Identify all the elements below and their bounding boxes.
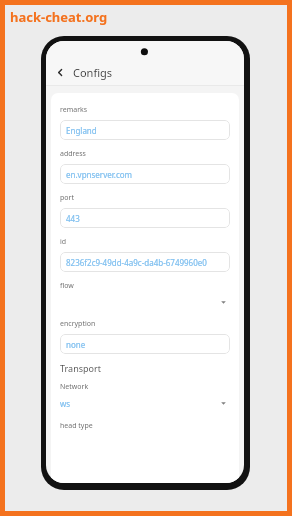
staticText: none — [66, 339, 86, 350]
staticText: id — [60, 237, 67, 247]
staticText: hack-cheat.org — [10, 8, 108, 26]
button[interactable]: en.vpnserver.com — [60, 164, 230, 184]
staticText: England — [66, 125, 97, 136]
staticText: en.vpnserver.com — [66, 169, 133, 180]
button[interactable]: none — [60, 334, 230, 354]
staticText: Transport — [60, 362, 101, 374]
staticText: encryption — [60, 319, 96, 329]
staticText: remarks — [60, 105, 88, 115]
staticText: 8236f2c9-49dd-4a9c-da4b-6749960e0 — [66, 257, 207, 268]
button[interactable]: 8236f2c9-49dd-4a9c-da4b-6749960e0 — [60, 252, 230, 272]
staticText: ws — [60, 398, 71, 409]
staticText: head type — [60, 421, 93, 431]
button[interactable]: 443 — [60, 208, 230, 228]
staticText: port — [60, 193, 74, 203]
staticText: flow — [60, 281, 74, 291]
button[interactable]: Select option — [60, 293, 230, 312]
button[interactable]: Select option — [60, 394, 230, 413]
staticText: Network — [60, 382, 89, 392]
button[interactable]: Back — [52, 64, 68, 80]
staticText: Configs — [73, 65, 113, 80]
button[interactable]: England — [60, 120, 230, 140]
staticText: 443 — [66, 213, 80, 224]
staticText: address — [60, 149, 86, 159]
